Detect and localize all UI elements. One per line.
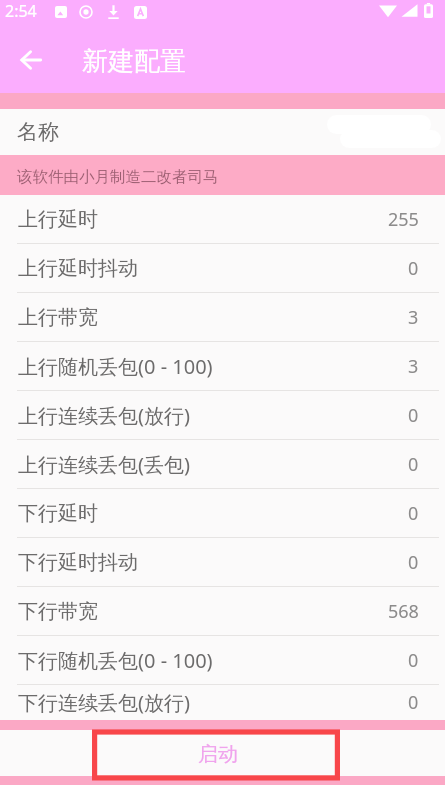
staticText: 下行延时: [18, 501, 98, 526]
button[interactable]: 下行延时: [0, 489, 445, 538]
staticText: 3: [408, 354, 419, 379]
button[interactable]: 上行连续丢包(放行): [0, 391, 445, 440]
staticText: 下行随机丢包(0 - 100): [18, 647, 213, 674]
button[interactable]: 下行连续丢包(放行): [0, 685, 445, 720]
staticText: 568: [388, 599, 419, 624]
staticText: 255: [388, 207, 419, 232]
staticText: 下行带宽: [18, 599, 98, 624]
button[interactable]: 下行随机丢包(0 - 100): [0, 636, 445, 685]
button[interactable]: 上行连续丢包(丢包): [0, 440, 445, 489]
staticText: 上行连续丢包(丢包): [18, 451, 190, 478]
staticText: 0: [408, 648, 419, 673]
staticText: 0: [408, 256, 419, 281]
button[interactable]: 下行延时抖动: [0, 538, 445, 587]
staticText: 上行带宽: [18, 305, 98, 330]
staticText: 0: [408, 452, 419, 477]
staticText: 新建配置: [82, 45, 186, 78]
staticText: 上行连续丢包(放行): [18, 402, 190, 429]
staticText: 0: [408, 403, 419, 428]
staticText: 0: [408, 501, 419, 526]
staticText: 3: [408, 305, 419, 330]
button[interactable]: 名称: [0, 109, 445, 155]
button[interactable]: 上行延时: [0, 195, 445, 244]
staticText: 0: [408, 550, 419, 575]
staticText: 上行随机丢包(0 - 100): [18, 353, 213, 380]
staticText: 2:54: [5, 0, 37, 22]
button[interactable]: 启动: [0, 730, 445, 776]
staticText: 名称: [17, 119, 59, 145]
staticText: 下行连续丢包(放行): [18, 689, 190, 716]
staticText: 启动: [198, 742, 238, 767]
button[interactable]: 上行延时抖动: [0, 244, 445, 293]
staticText: 该软件由小月制造二改者司马: [17, 167, 219, 187]
button[interactable]: 上行带宽: [0, 293, 445, 342]
staticText: 上行延时抖动: [18, 256, 138, 281]
staticText: 0: [408, 690, 419, 715]
button[interactable]: 上行随机丢包(0 - 100): [0, 342, 445, 391]
button[interactable]: Back: [8, 37, 54, 83]
staticText: 下行延时抖动: [18, 550, 138, 575]
button[interactable]: 下行带宽: [0, 587, 445, 636]
staticText: 上行延时: [18, 207, 98, 232]
